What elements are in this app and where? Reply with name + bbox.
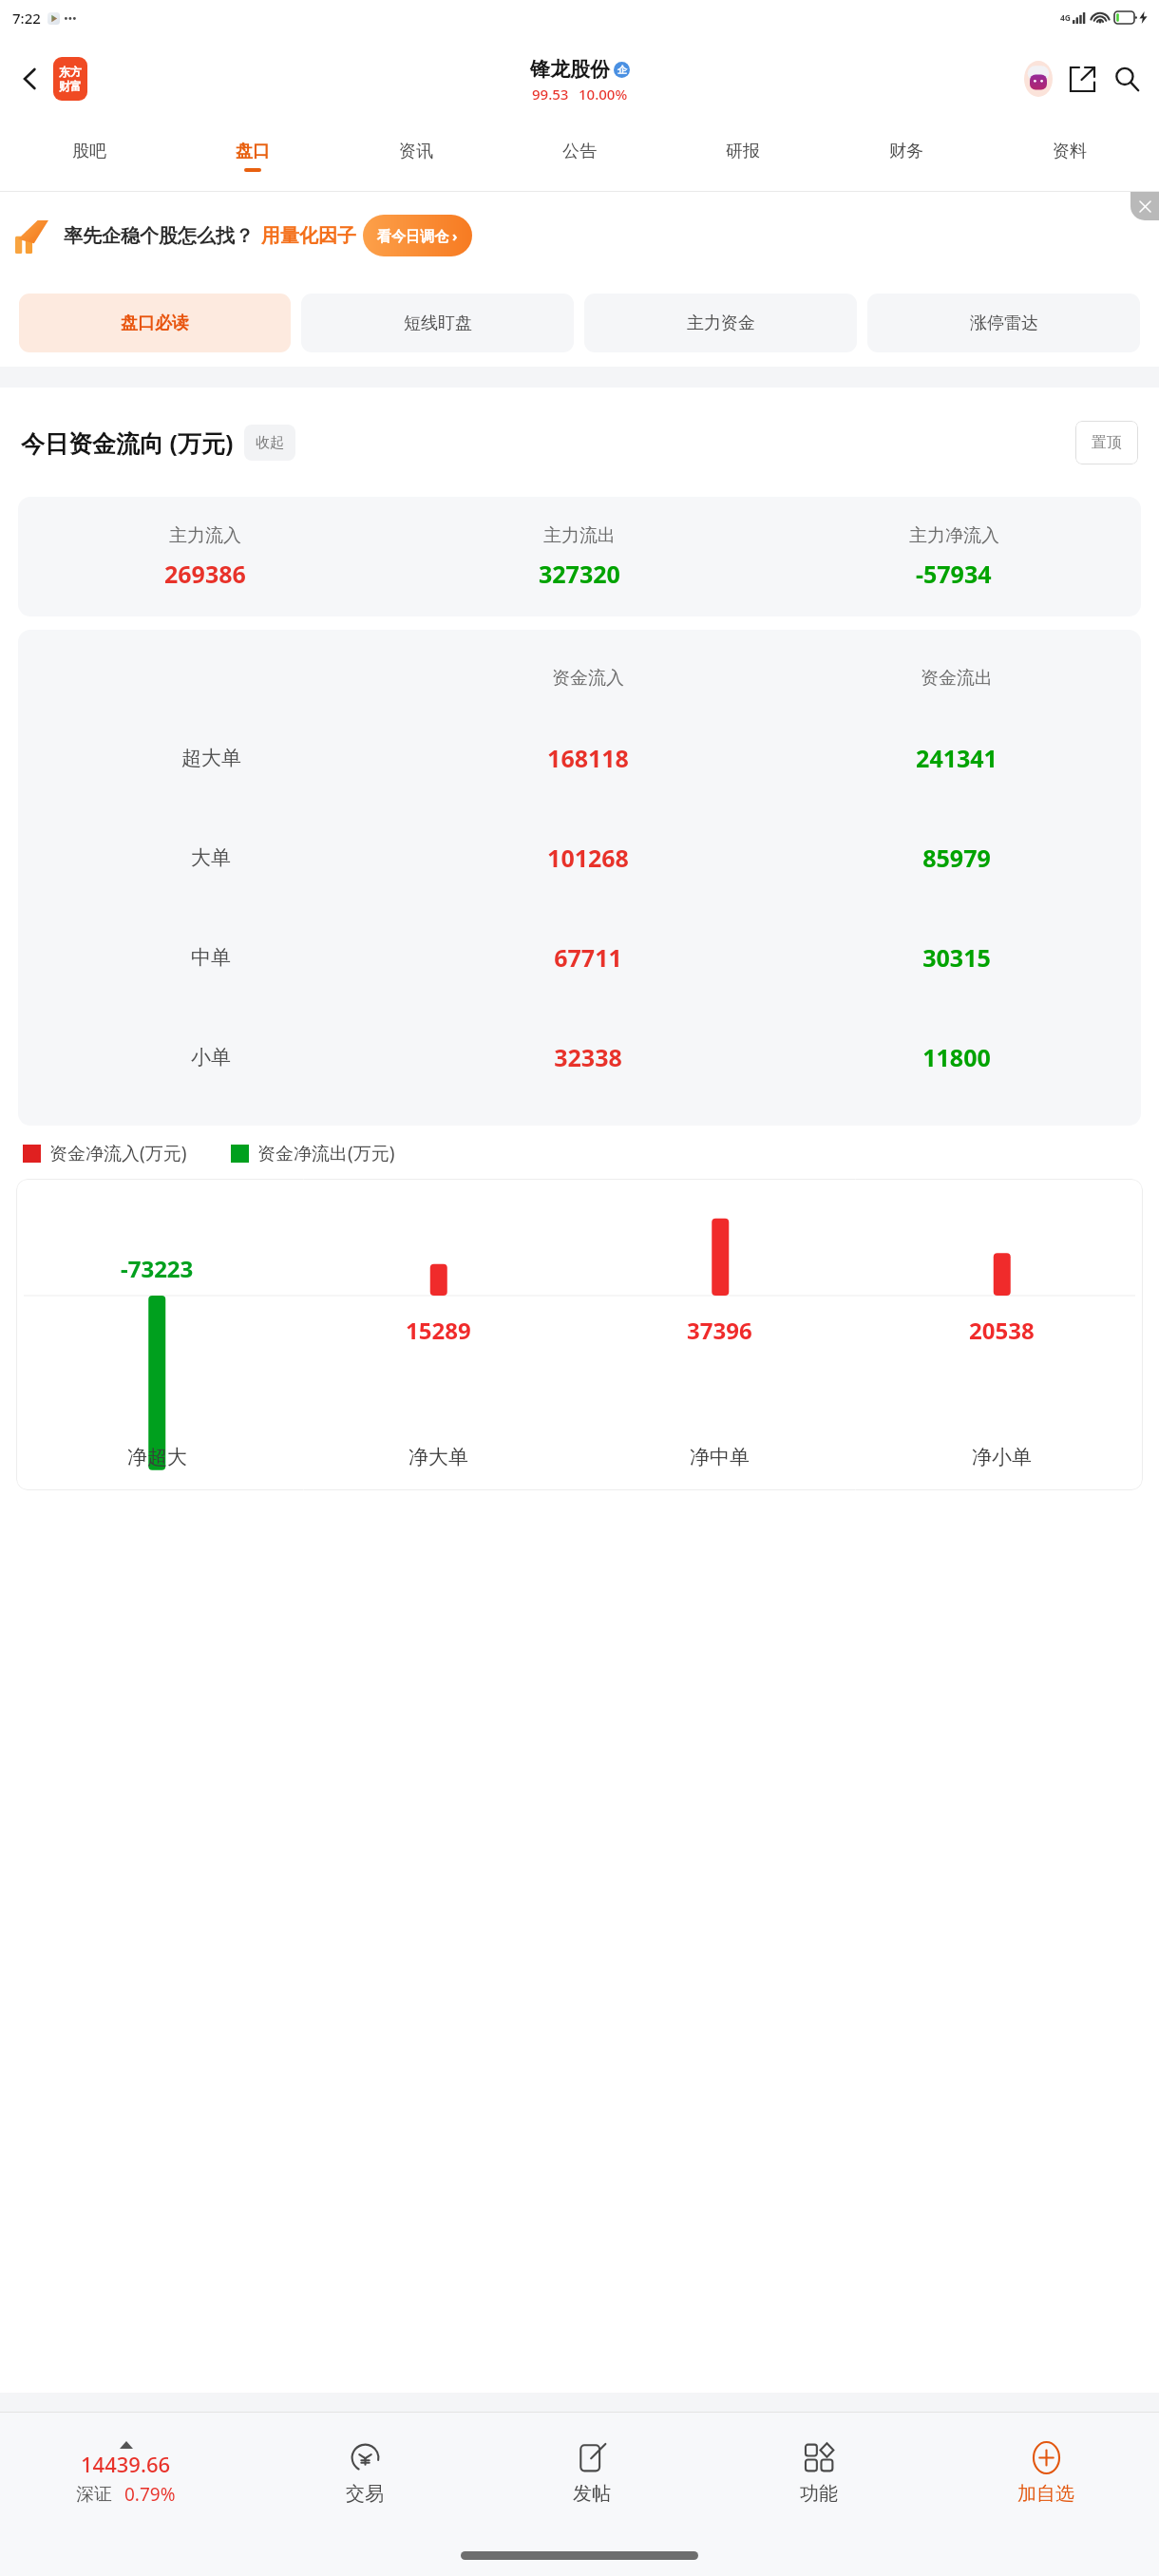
button[interactable]: Search [1104, 56, 1149, 102]
staticText: 发帖 [573, 2482, 611, 2506]
button[interactable]: 交易 [251, 2413, 478, 2534]
staticText: 收起 [256, 434, 284, 452]
staticText: 269386 [164, 558, 246, 590]
staticText: 37396 [687, 1315, 752, 1346]
button[interactable]: 小单 [18, 1007, 1141, 1107]
staticText: 涨停雷达 [970, 313, 1038, 334]
staticText: 加自选 [1017, 2482, 1074, 2506]
staticText: -57934 [916, 558, 992, 590]
button[interactable]: 收起 [256, 425, 284, 461]
staticText: 净中单 [690, 1445, 750, 1469]
staticText: 公告 [562, 141, 597, 162]
staticText: 4G [1060, 12, 1072, 24]
staticText: 东方 [59, 65, 82, 79]
staticText: 净小单 [972, 1445, 1032, 1469]
staticText: 0.79% [124, 2482, 176, 2507]
staticText: 11800 [772, 1041, 1141, 1073]
staticText: 资金净流出(万元) [257, 1141, 395, 1165]
staticText: 短线盯盘 [404, 313, 472, 334]
staticText: 20538 [969, 1315, 1035, 1346]
staticText: 资料 [1053, 141, 1087, 162]
staticText: 股吧 [72, 141, 106, 162]
button[interactable]: 看今日调仓 › [377, 215, 458, 256]
button[interactable]: 主力资金 [584, 294, 857, 352]
button[interactable]: 主力流入 [18, 497, 1141, 616]
button[interactable]: AI助手 [1016, 57, 1060, 101]
staticText: 用量化因子 [261, 224, 356, 248]
button[interactable]: 涨停雷达 [867, 294, 1140, 352]
staticText: 资金流出 [772, 667, 1141, 690]
staticText: 241341 [772, 742, 1141, 774]
staticText: 101268 [404, 842, 772, 874]
staticText: 资讯 [399, 141, 433, 162]
button[interactable]: 盘口 [171, 122, 334, 191]
button[interactable]: 资金流入 [18, 630, 1141, 1126]
button[interactable]: Close ad [1130, 192, 1159, 220]
button[interactable]: 发帖 [478, 2413, 705, 2534]
staticText: 企 [617, 64, 627, 76]
staticText: 7:22 [12, 9, 41, 28]
staticText: 净超大 [127, 1445, 187, 1469]
button[interactable]: 资讯 [334, 122, 498, 191]
staticText: 财务 [889, 141, 923, 162]
button[interactable]: 研报 [661, 122, 825, 191]
staticText: 大单 [191, 845, 231, 870]
staticText: 99.53 [532, 85, 569, 104]
button[interactable]: 盘口必读 [19, 294, 291, 352]
staticText: 中单 [191, 945, 231, 970]
button[interactable]: Share [1060, 57, 1104, 101]
button[interactable]: 置顶 [1075, 421, 1138, 464]
staticText: 168118 [404, 742, 772, 774]
staticText: 小单 [191, 1045, 231, 1070]
staticText: 盘口 [236, 141, 270, 162]
button[interactable]: 公告 [498, 122, 661, 191]
button[interactable]: 短线盯盘 [301, 294, 574, 352]
staticText: 率先企稳个股怎么找？ [64, 224, 254, 248]
button[interactable]: 加自选 [932, 2413, 1159, 2534]
button[interactable]: 中单 [18, 907, 1141, 1007]
staticText: -73223 [121, 1253, 194, 1284]
button[interactable]: 超大单 [18, 708, 1141, 807]
staticText: 10.00% [579, 85, 628, 104]
button[interactable]: 东方财富 [53, 57, 87, 101]
button[interactable]: 资料 [988, 122, 1151, 191]
staticText: 今日资金流向 (万元) [21, 426, 234, 459]
button[interactable]: 大单 [18, 807, 1141, 907]
staticText: 功能 [800, 2482, 838, 2506]
button[interactable]: 14439.66 [0, 2413, 251, 2534]
staticText: 锋龙股份 [530, 57, 610, 82]
staticText: 交易 [346, 2482, 384, 2506]
staticText: 主力净流入 [909, 524, 999, 547]
staticText: 超大单 [181, 746, 241, 770]
staticText: 深证 [76, 2483, 112, 2506]
staticText: 30315 [772, 941, 1141, 974]
staticText: 主力资金 [687, 313, 755, 334]
button[interactable]: 率先企稳个股怎么找？ [15, 192, 1142, 279]
staticText: 财富 [59, 79, 82, 93]
staticText: 净大单 [408, 1445, 468, 1469]
staticText: 14439.66 [81, 2450, 171, 2478]
staticText: 85979 [772, 842, 1141, 874]
staticText: 资金流入 [404, 667, 772, 690]
staticText: 资金净流入(万元) [49, 1141, 187, 1165]
staticText: 主力流出 [543, 524, 616, 547]
staticText: 67711 [404, 941, 772, 974]
button[interactable]: 股吧 [8, 122, 171, 191]
button[interactable]: 财务 [825, 122, 988, 191]
button[interactable]: -73223 [16, 1179, 1143, 1490]
staticText: 32338 [404, 1041, 772, 1073]
staticText: 327320 [539, 558, 620, 590]
staticText: 盘口必读 [121, 313, 189, 334]
button[interactable]: Back [8, 56, 53, 102]
staticText: 看今日调仓 › [377, 226, 458, 245]
staticText: 置顶 [1092, 433, 1122, 452]
staticText: 研报 [726, 141, 760, 162]
staticText: 15289 [406, 1315, 471, 1346]
button[interactable]: 功能 [705, 2413, 932, 2534]
staticText: 主力流入 [169, 524, 241, 547]
